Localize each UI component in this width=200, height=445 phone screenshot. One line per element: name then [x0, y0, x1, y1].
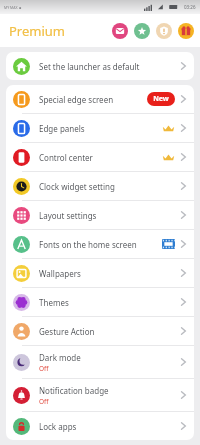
- staticText: Control center: [39, 152, 93, 163]
- staticText: Layout settings: [39, 210, 97, 221]
- staticText: Special edge screen: [39, 94, 114, 105]
- staticText: Clock widget setting: [39, 181, 115, 192]
- button[interactable]: Dark mode: [6, 346, 194, 379]
- staticText: MY MAX ▪: [4, 5, 23, 10]
- staticText: Set the launcher as default: [39, 61, 140, 72]
- button[interactable]: Gift: [178, 23, 194, 39]
- button[interactable]: Gesture Action: [6, 317, 194, 346]
- button[interactable]: Notification badge: [6, 379, 194, 412]
- button[interactable]: Themes: [6, 288, 194, 317]
- button[interactable]: Clock widget setting: [6, 172, 194, 201]
- staticText: Themes: [39, 297, 69, 308]
- button[interactable]: Fonts on the home screen: [6, 230, 194, 259]
- staticText: 03:26: [184, 4, 196, 10]
- staticText: Off: [39, 397, 49, 406]
- staticText: Edge panels: [39, 123, 85, 134]
- button[interactable]: Lock apps: [6, 412, 194, 440]
- staticText: Lock apps: [39, 421, 77, 432]
- button[interactable]: Control center: [6, 143, 194, 172]
- button[interactable]: Wallpapers: [6, 259, 194, 288]
- staticText: Premium: [9, 22, 66, 40]
- button[interactable]: Set the launcher as default: [6, 52, 194, 80]
- staticText: Gesture Action: [39, 326, 95, 337]
- button[interactable]: Layout settings: [6, 201, 194, 230]
- staticText: Dark mode: [39, 352, 81, 363]
- staticText: Notification badge: [39, 385, 109, 396]
- staticText: Wallpapers: [39, 268, 81, 279]
- button[interactable]: Edge panels: [6, 114, 194, 143]
- button[interactable]: Messages: [112, 23, 128, 39]
- staticText: Fonts on the home screen: [39, 239, 137, 250]
- staticText: New: [153, 94, 169, 104]
- button[interactable]: Rate: [134, 23, 150, 39]
- button[interactable]: Privacy: [156, 23, 172, 39]
- button[interactable]: Special edge screen: [6, 85, 194, 114]
- staticText: Off: [39, 364, 49, 373]
